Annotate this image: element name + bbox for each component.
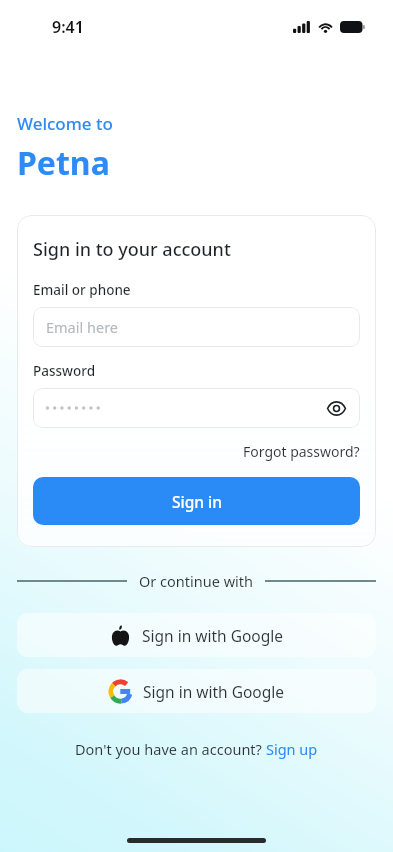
button[interactable]: Show password: [321, 393, 351, 423]
button[interactable]: Sign up: [266, 739, 318, 759]
staticText: Forgot password?: [243, 442, 360, 461]
staticText: Don't you have an account?: [75, 739, 266, 759]
button[interactable]: Show password: [33, 388, 360, 428]
staticText: Sign in with Google: [142, 625, 283, 646]
staticText: Or continue with: [139, 571, 253, 591]
button[interactable]: Sign in: [33, 477, 360, 525]
button[interactable]: Email here: [33, 307, 360, 347]
staticText: Sign in with Google: [143, 681, 284, 702]
staticText: Petna: [17, 141, 110, 185]
staticText: Sign up: [266, 739, 318, 759]
button[interactable]: Forgot password?: [243, 442, 360, 461]
button[interactable]: Sign in with Google: [17, 669, 376, 713]
staticText: Email here: [46, 317, 119, 337]
staticText: Sign in to your account: [33, 237, 231, 262]
staticText: 9:41: [52, 16, 84, 38]
staticText: Welcome to: [17, 112, 113, 135]
button[interactable]: Sign in with Google: [17, 613, 376, 657]
staticText: Password: [33, 362, 96, 380]
staticText: Email or phone: [33, 281, 131, 299]
staticText: Sign in: [172, 491, 222, 512]
